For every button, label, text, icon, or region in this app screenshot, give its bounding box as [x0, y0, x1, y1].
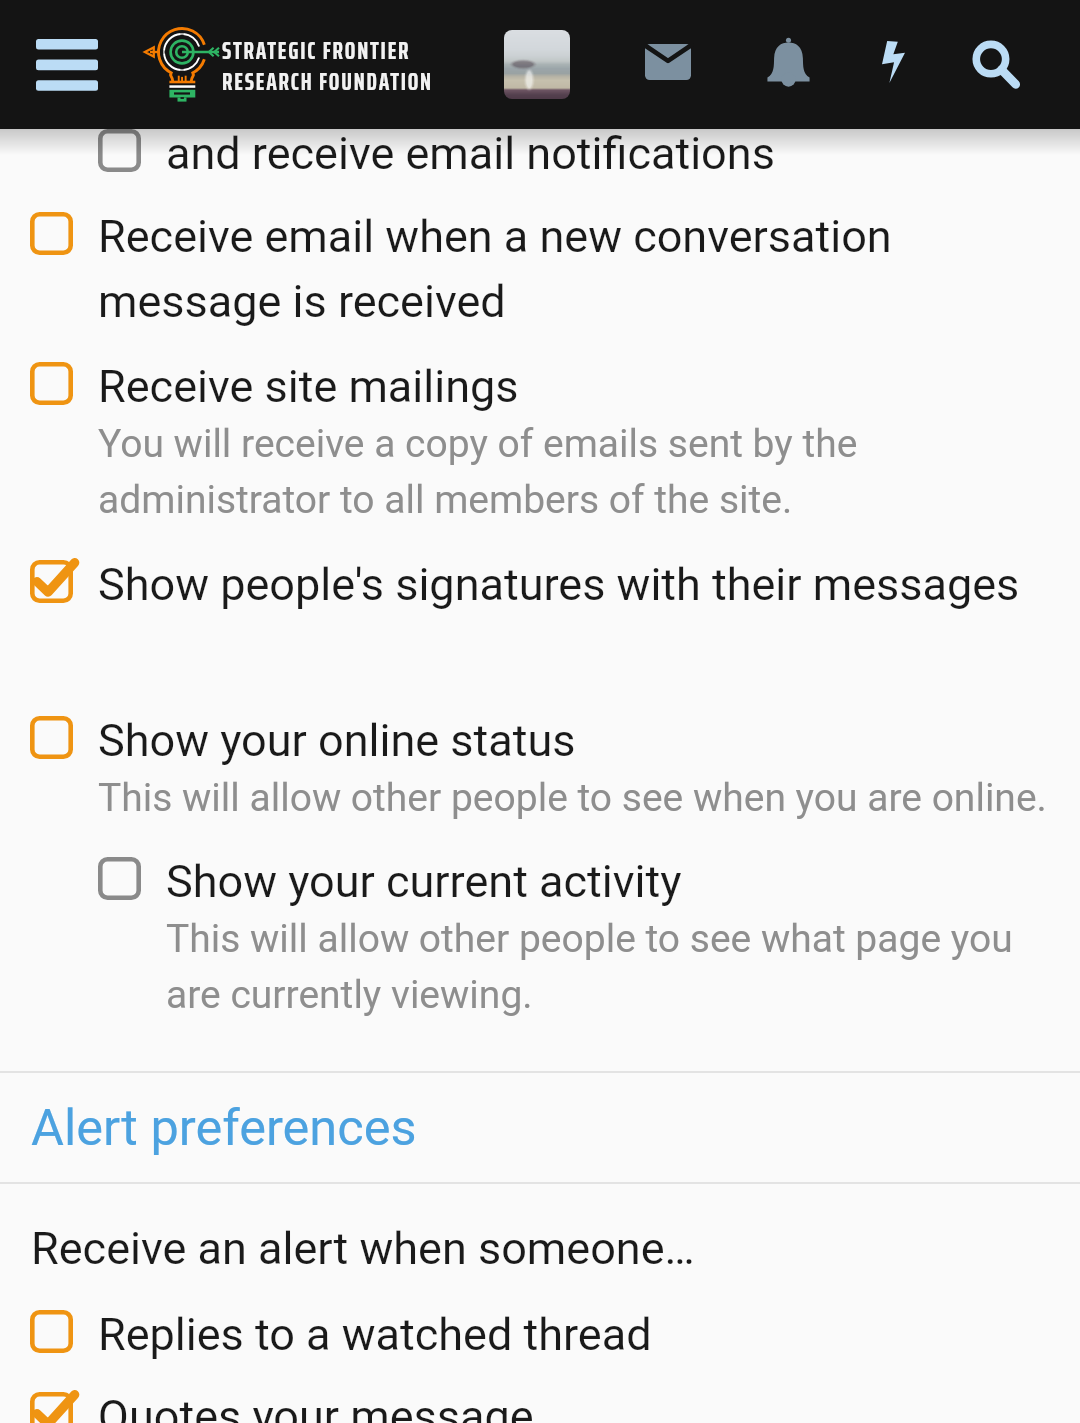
staticText: message is received — [98, 275, 506, 328]
staticText: Show your online status — [98, 714, 576, 767]
staticText: Show people's signatures with their mess… — [98, 558, 1020, 611]
staticText: are currently viewing. — [166, 972, 533, 1018]
staticText: Show your current activity — [166, 855, 682, 908]
button[interactable]: Unchecked — [80, 115, 159, 194]
button[interactable]: What's new — [835, 1, 951, 122]
button[interactable]: Checked — [12, 546, 91, 625]
staticText: STRATEGIC FRONTIER — [222, 31, 411, 71]
button[interactable]: Unchecked — [80, 843, 159, 922]
staticText: This will allow other people to see when… — [98, 775, 1047, 821]
button[interactable]: Menu — [10, 0, 123, 129]
button[interactable]: Unchecked — [12, 348, 91, 427]
staticText: Quotes your message — [98, 1390, 534, 1423]
staticText: Replies to a watched thread — [98, 1308, 652, 1361]
button[interactable]: Your profile — [490, 14, 584, 115]
staticText: You will receive a copy of emails sent b… — [98, 421, 858, 467]
staticText: Alert preferences — [31, 1098, 417, 1157]
staticText: Receive site mailings — [98, 360, 519, 413]
staticText: This will allow other people to see what… — [166, 916, 1013, 962]
button[interactable]: Alerts — [730, 0, 846, 120]
button[interactable]: Unchecked — [12, 1296, 91, 1375]
button[interactable]: Unchecked — [12, 198, 91, 277]
button[interactable]: Checked — [12, 1378, 91, 1423]
button[interactable]: Inbox — [610, 1, 726, 122]
staticText: administrator to all members of the site… — [98, 477, 793, 523]
button[interactable]: Unchecked — [12, 702, 91, 781]
staticText: RESEARCH FOUNDATION — [222, 62, 433, 102]
staticText: Receive an alert when someone… — [31, 1222, 695, 1275]
button[interactable]: Search — [938, 1, 1054, 122]
staticText: and receive email notifications — [166, 127, 775, 180]
staticText: Receive email when a new conversation — [98, 210, 892, 263]
